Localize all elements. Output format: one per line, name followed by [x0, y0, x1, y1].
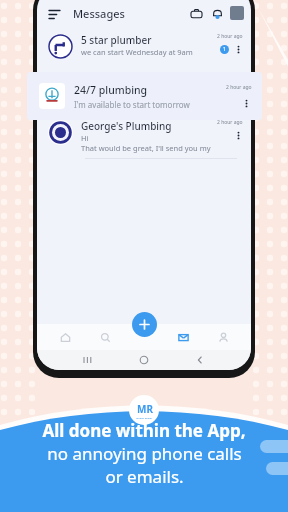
- staticText: I'm available to start tomorrow: [74, 99, 190, 110]
- staticText: Hi: [81, 133, 89, 143]
- staticText: 24/7 plumbing: [74, 83, 148, 97]
- staticText: 5 star plumber: [81, 33, 152, 47]
- staticText: we can start Wednesday at 9am: [81, 47, 193, 57]
- button[interactable]: More options: [233, 44, 243, 54]
- button[interactable]: Menu: [46, 5, 62, 21]
- staticText: MR: [137, 402, 153, 416]
- staticText: Mobile Repair: [136, 416, 153, 419]
- button[interactable]: Jobs: [188, 5, 205, 22]
- button[interactable]: Messages: [172, 326, 194, 348]
- button[interactable]: More options: [241, 98, 252, 109]
- staticText: 2 hour ago: [217, 33, 243, 40]
- staticText: That would be great, I'll send you my: [81, 143, 211, 153]
- button[interactable]: 24/7 plumbing: [27, 72, 262, 120]
- staticText: 1: [223, 46, 226, 53]
- button[interactable]: George's Plumbing: [37, 112, 251, 158]
- button[interactable]: Search: [94, 326, 116, 348]
- button[interactable]: Profile: [230, 6, 244, 20]
- button[interactable]: More options: [233, 130, 243, 140]
- staticText: Messages: [73, 6, 125, 21]
- staticText: no annoying phone calls: [47, 442, 242, 465]
- button[interactable]: Profile: [212, 326, 234, 348]
- staticText: 2 hour ago: [217, 119, 243, 126]
- staticText: George's Plumbing: [81, 119, 172, 133]
- staticText: 2 hour ago: [226, 84, 252, 91]
- staticText: All done within the App,: [42, 419, 246, 442]
- staticText: or emails.: [105, 465, 184, 488]
- button[interactable]: Notifications: [209, 5, 226, 22]
- button[interactable]: New message: [132, 312, 157, 337]
- button[interactable]: 5 star plumber: [37, 26, 251, 64]
- button[interactable]: Home: [54, 326, 76, 348]
